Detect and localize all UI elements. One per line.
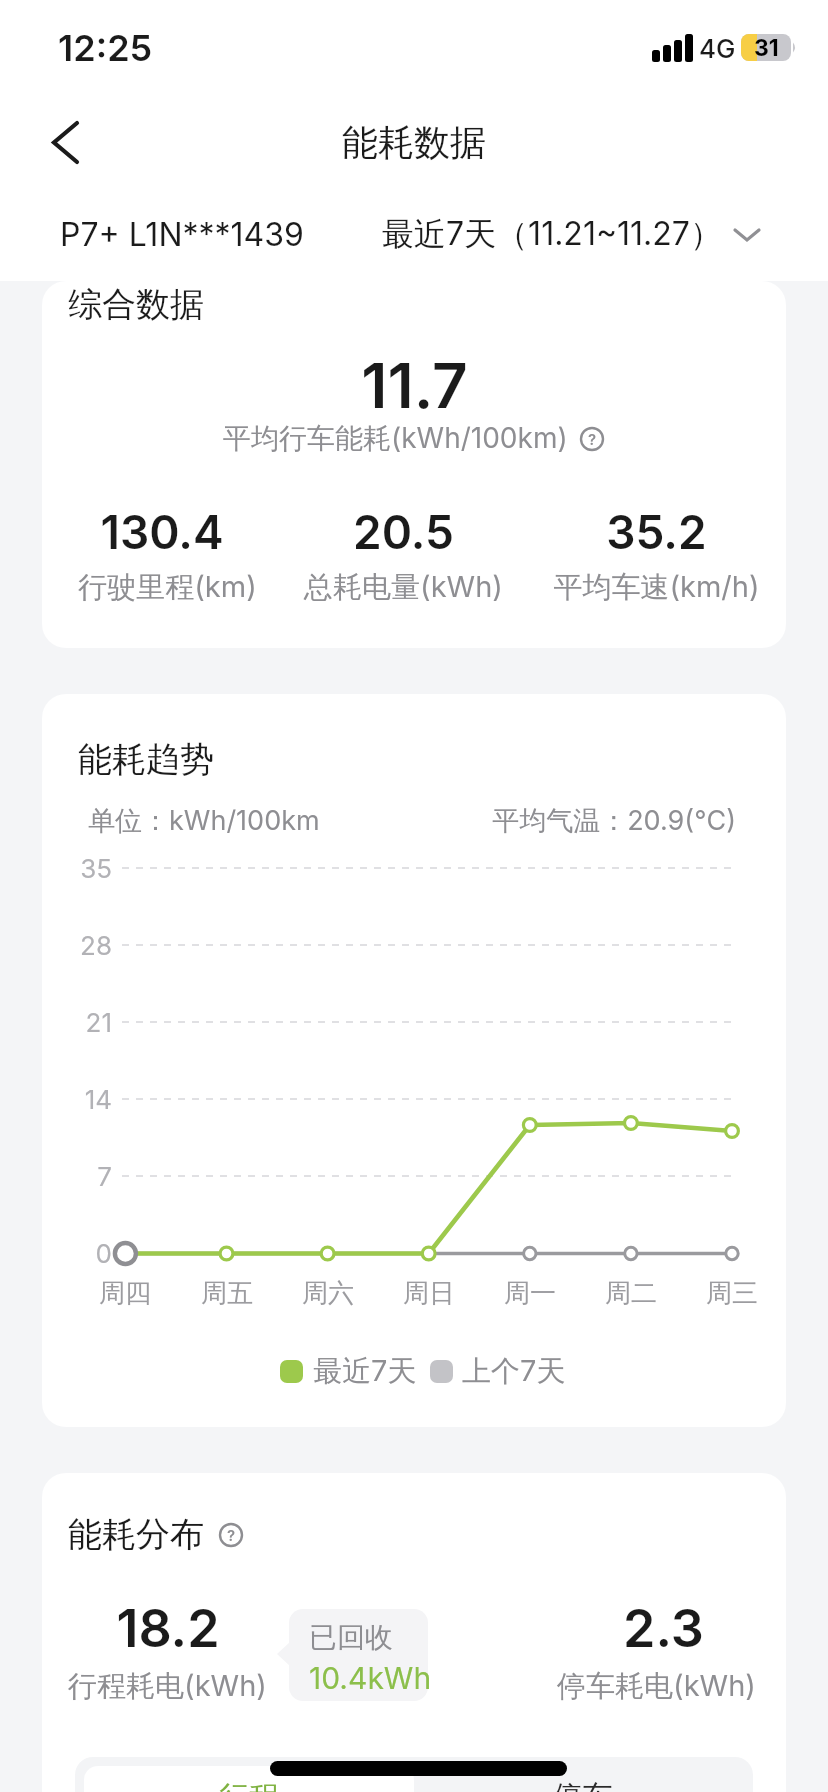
staticText: 周六 (302, 1277, 354, 1310)
staticText: 总耗电量(kWh) (304, 569, 503, 606)
staticText: 周日 (403, 1277, 455, 1310)
staticText: 周四 (99, 1277, 151, 1310)
staticText: 7 (97, 1161, 112, 1192)
staticText: 20.5 (353, 504, 454, 560)
staticText: 周一 (504, 1277, 556, 1310)
staticText: 11.7 (361, 348, 468, 423)
staticText: 28 (80, 930, 112, 961)
staticText: 上个7天 (462, 1353, 566, 1390)
staticText: 14 (84, 1084, 112, 1115)
staticText: 21 (85, 1007, 112, 1038)
staticText: 4G (699, 33, 736, 64)
staticText: 最近7天 (313, 1353, 417, 1390)
staticText: 31 (754, 34, 779, 61)
button[interactable] (84, 1766, 414, 1792)
staticText: 最近7天（11.21~11.27） (382, 214, 722, 255)
staticText: 停车耗电(kWh) (557, 1668, 756, 1705)
staticText: 停车 (553, 1778, 613, 1792)
staticText: 2.3 (623, 1597, 704, 1660)
staticText: 周五 (201, 1277, 253, 1310)
staticText: 平均车速(km/h) (553, 569, 760, 606)
staticText: 周二 (605, 1277, 657, 1310)
staticText: 18.2 (116, 1597, 220, 1660)
staticText: 10.4kWh (309, 1660, 432, 1696)
staticText: 能耗数据 (342, 120, 486, 165)
button[interactable] (40, 120, 90, 166)
button[interactable]: ? (578, 425, 606, 453)
staticText: ? (588, 430, 597, 448)
staticText: 能耗分布 (68, 1513, 204, 1556)
staticText: 已回收 (309, 1620, 393, 1655)
staticText: 单位：kWh/100km (88, 804, 320, 838)
staticText: 周三 (706, 1277, 758, 1310)
staticText: 平均行车能耗(kWh/100km) (223, 421, 568, 456)
button[interactable] (420, 1766, 750, 1792)
button[interactable]: ? (217, 1521, 245, 1549)
staticText: 能耗趋势 (78, 738, 214, 781)
staticText: 综合数据 (68, 283, 204, 326)
staticText: 行程耗电(kWh) (68, 1668, 267, 1705)
staticText: 行驶里程(km) (78, 569, 257, 606)
staticText: 0 (95, 1238, 112, 1269)
button[interactable]: 最近7天（11.21~11.27） (330, 204, 762, 264)
staticText: 130.4 (100, 504, 224, 560)
staticText: 35.2 (606, 504, 707, 560)
staticText: 12:25 (58, 26, 153, 70)
staticText: P7+ L1N***1439 (60, 215, 304, 254)
staticText: ? (227, 1526, 236, 1544)
staticText: 35 (80, 853, 112, 884)
staticText: 平均气温：20.9(°C) (492, 804, 736, 838)
staticText: 行程 (219, 1778, 279, 1792)
